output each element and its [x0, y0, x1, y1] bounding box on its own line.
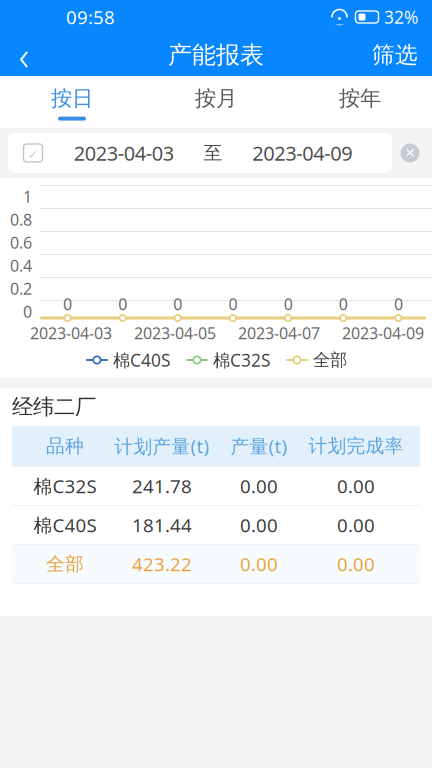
staticText: 0 — [118, 293, 127, 315]
staticText: 0.00 — [240, 552, 278, 576]
staticText: 1 — [23, 186, 32, 207]
staticText: 全部 — [313, 349, 347, 371]
staticText: 计划完成率 — [308, 434, 403, 457]
button[interactable]: Back — [0, 34, 48, 76]
staticText: 计划产量(t) — [114, 434, 209, 458]
staticText: 2023-04-03 — [30, 322, 112, 344]
staticText: 棉C32S — [33, 474, 96, 498]
button[interactable]: 筛选 — [372, 34, 432, 76]
staticText: 按年 — [339, 85, 381, 112]
staticText: 0 — [173, 293, 182, 315]
staticText: 2023-04-03 — [74, 140, 174, 166]
staticText: 经纬二厂 — [12, 394, 96, 420]
staticText: ✓ — [28, 148, 38, 161]
staticText: 0.00 — [240, 513, 278, 537]
staticText: 棉C32S — [213, 348, 271, 371]
staticText: ✕ — [404, 145, 415, 160]
staticText: ‹ — [18, 28, 29, 81]
staticText: 2023-04-09 — [252, 140, 352, 166]
staticText: 0.6 — [10, 232, 32, 253]
staticText: 0 — [23, 301, 32, 322]
staticText: 产量(t) — [230, 434, 287, 458]
staticText: 至 — [203, 141, 222, 164]
staticText: 全部 — [46, 552, 84, 575]
staticText: 0 — [339, 293, 348, 315]
staticText: 棉C40S — [113, 348, 171, 371]
button[interactable]: 按月 — [144, 76, 288, 128]
staticText: 0 — [394, 293, 403, 315]
staticText: 2023-04-05 — [134, 322, 216, 344]
staticText: 0.00 — [337, 513, 375, 537]
staticText: 品种 — [46, 434, 84, 457]
staticText: 按月 — [195, 85, 237, 112]
staticText: 241.78 — [132, 474, 192, 498]
staticText: 按日 — [51, 85, 93, 112]
staticText: 0 — [63, 293, 72, 315]
staticText: 0.00 — [337, 552, 375, 576]
button[interactable]: 按日 — [0, 76, 144, 128]
staticText: 产能报表 — [168, 40, 264, 70]
staticText: 0.00 — [240, 474, 278, 498]
staticText: 0.8 — [10, 209, 32, 230]
staticText: 0.4 — [10, 255, 32, 276]
staticText: 09:58 — [66, 5, 115, 29]
staticText: 筛选 — [372, 41, 418, 69]
staticText: 0.00 — [337, 474, 375, 498]
staticText: 2023-04-09 — [342, 322, 424, 344]
button[interactable]: ✓ — [8, 133, 392, 173]
button[interactable]: 按年 — [288, 76, 432, 128]
staticText: 181.44 — [132, 513, 192, 537]
staticText: 2023-04-07 — [238, 322, 320, 344]
staticText: 0.2 — [10, 278, 32, 299]
staticText: 423.22 — [132, 552, 192, 576]
staticText: 棉C40S — [33, 513, 96, 537]
staticText: 0 — [228, 293, 237, 315]
button[interactable]: Clear date range — [392, 131, 428, 175]
staticText: 0 — [284, 293, 293, 315]
staticText: 32% — [384, 5, 418, 28]
